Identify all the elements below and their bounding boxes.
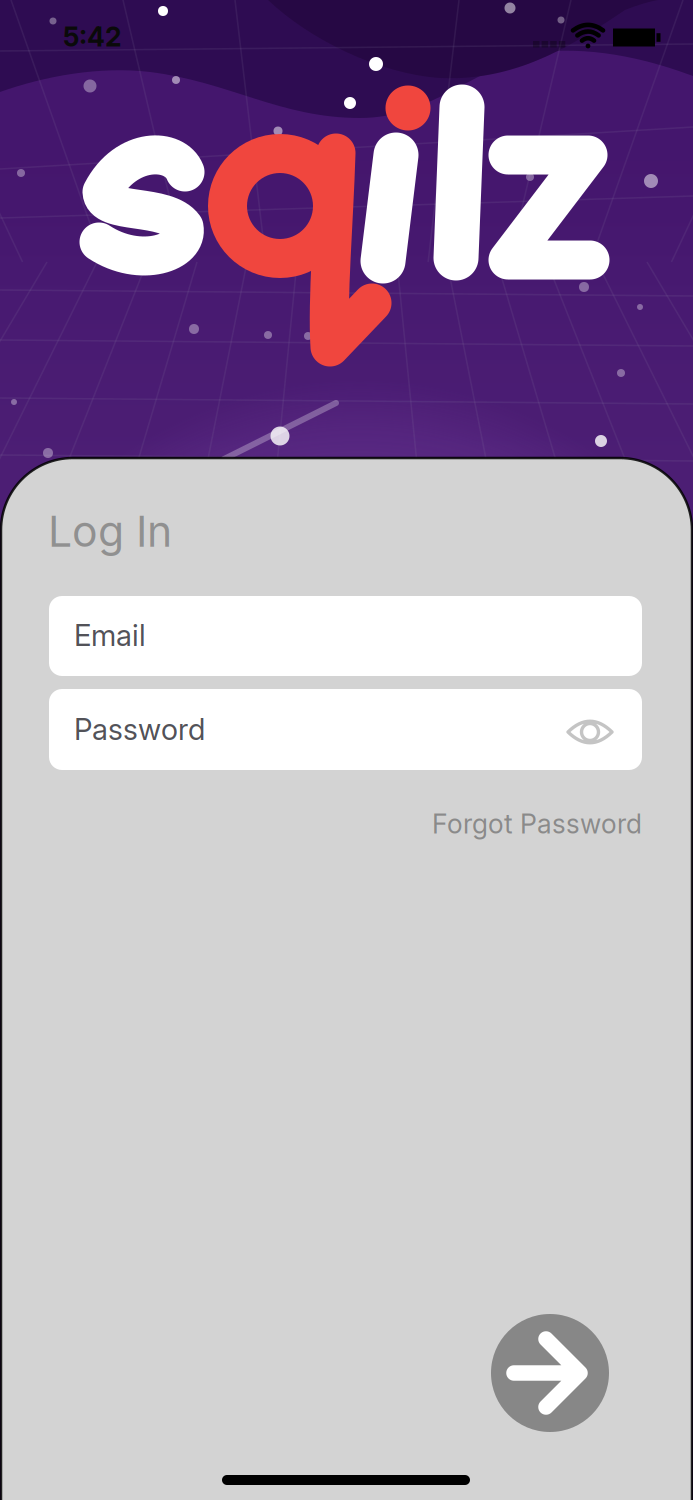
staticText: 5:42: [63, 21, 122, 52]
button[interactable]: Password: [49, 689, 642, 770]
button[interactable]: Show Password: [545, 689, 635, 770]
button[interactable]: Forgot Password: [432, 808, 642, 839]
button[interactable]: Submit: [491, 1314, 609, 1432]
staticText: Forgot Password: [432, 808, 642, 839]
staticText: Password: [74, 712, 205, 747]
staticText: Email: [74, 618, 146, 653]
staticText: Log In: [48, 506, 172, 556]
button[interactable]: Email: [49, 596, 642, 676]
